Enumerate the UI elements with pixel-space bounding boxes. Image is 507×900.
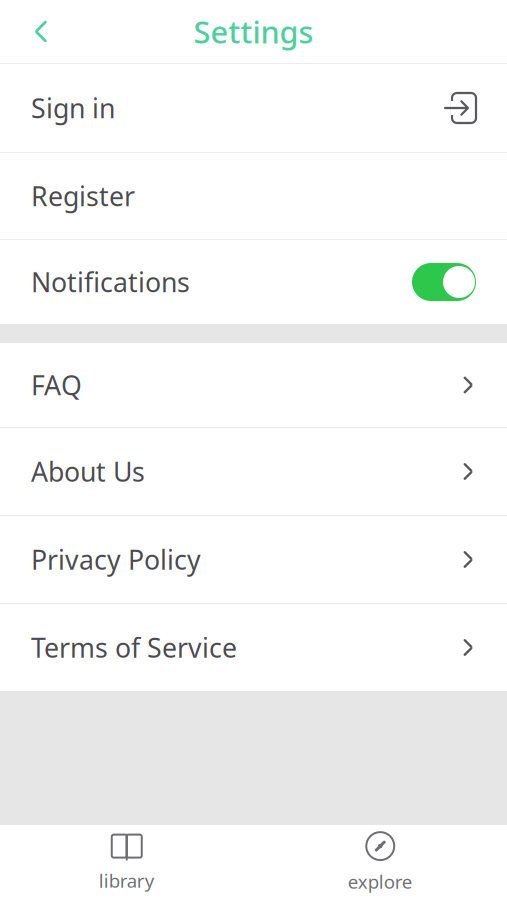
staticText: explore [348,869,413,894]
staticText: FAQ [31,367,82,403]
button[interactable]: explore [253,825,507,900]
staticText: Privacy Policy [31,542,201,577]
button[interactable]: Register [0,153,507,239]
button[interactable]: Notifications [0,240,507,324]
button[interactable]: About Us [0,428,507,515]
staticText: Settings [193,11,313,52]
button[interactable]: FAQ [0,343,507,427]
staticText: Sign in [31,90,115,126]
button[interactable]: library [0,825,253,900]
staticText: Terms of Service [31,630,237,665]
button[interactable]: Sign in [0,64,507,152]
button[interactable]: Terms of Service [0,604,507,691]
staticText: library [99,868,155,893]
button[interactable]: Privacy Policy [0,516,507,603]
button[interactable]: Back [0,0,68,63]
staticText: Register [31,178,135,214]
staticText: Notifications [31,264,190,300]
staticText: About Us [31,454,145,489]
